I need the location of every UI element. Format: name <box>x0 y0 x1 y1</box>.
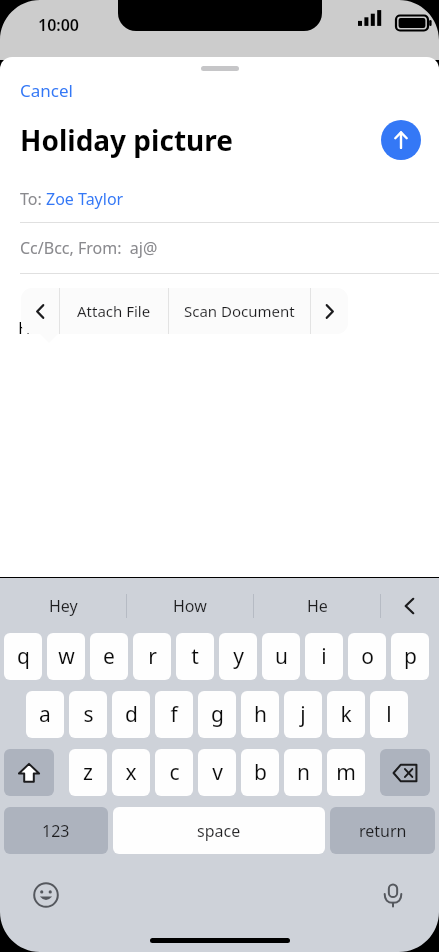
button[interactable]: How <box>127 578 253 633</box>
staticText: q <box>17 642 30 671</box>
button[interactable]: b <box>241 749 279 796</box>
staticText: a <box>39 700 51 729</box>
button[interactable]: k <box>327 691 365 738</box>
button[interactable]: return <box>330 807 435 854</box>
staticText: Hi <box>18 316 35 339</box>
button[interactable]: Emoji <box>26 875 66 915</box>
button[interactable]: a <box>26 691 64 738</box>
button[interactable]: He <box>254 578 380 633</box>
staticText: t <box>191 642 199 671</box>
staticText: n <box>297 758 310 787</box>
button[interactable]: f <box>155 691 193 738</box>
staticText: u <box>275 642 288 671</box>
staticText: x <box>125 758 137 787</box>
staticText: Cc/Bcc, From: aj@ <box>20 237 158 259</box>
staticText: g <box>211 700 224 729</box>
button[interactable]: Attach File <box>60 288 168 334</box>
staticText: k <box>340 700 352 729</box>
staticText: y <box>233 642 244 671</box>
button[interactable]: h <box>241 691 279 738</box>
staticText: return <box>359 820 407 842</box>
button[interactable]: 123 <box>4 807 108 854</box>
button[interactable]: space <box>113 807 325 854</box>
button[interactable]: Next <box>311 288 348 334</box>
button[interactable]: r <box>133 633 171 680</box>
button[interactable]: y <box>219 633 257 680</box>
button[interactable]: Shift <box>4 749 54 796</box>
staticText: l <box>386 700 392 729</box>
staticText: Holiday picture <box>20 121 381 159</box>
staticText: f <box>170 700 178 729</box>
button[interactable]: i <box>305 633 343 680</box>
button[interactable]: e <box>90 633 128 680</box>
button[interactable]: Send <box>381 120 421 160</box>
staticText: space <box>197 820 241 842</box>
staticText: e <box>103 642 115 671</box>
staticText: r <box>148 642 157 671</box>
staticText: h <box>254 700 267 729</box>
staticText: 10:00 <box>38 14 80 36</box>
button[interactable]: Dictation <box>373 875 413 915</box>
staticText: w <box>58 642 75 671</box>
button[interactable]: t <box>176 633 214 680</box>
button[interactable]: q <box>4 633 42 680</box>
button[interactable]: v <box>198 749 236 796</box>
staticText: b <box>254 758 267 787</box>
staticText: He <box>307 595 328 617</box>
button[interactable]: Backspace <box>380 749 430 796</box>
staticText: Cancel <box>20 79 73 102</box>
button[interactable]: g <box>198 691 236 738</box>
staticText: Attach File <box>77 301 151 321</box>
staticText: p <box>404 642 417 671</box>
button[interactable]: Cancel <box>0 73 93 108</box>
staticText: j <box>300 700 306 729</box>
staticText: i <box>321 642 327 671</box>
button[interactable]: d <box>112 691 150 738</box>
button[interactable]: u <box>262 633 300 680</box>
button[interactable]: To: <box>0 186 439 222</box>
staticText: To: <box>20 188 46 210</box>
button[interactable]: z <box>69 749 107 796</box>
button[interactable]: m <box>327 749 365 796</box>
button[interactable]: Scan Document <box>169 288 310 334</box>
button[interactable]: j <box>284 691 322 738</box>
staticText: Scan Document <box>184 301 295 321</box>
button[interactable]: Cc/Bcc, From: aj@ <box>0 223 439 273</box>
button[interactable]: l <box>370 691 408 738</box>
button[interactable]: s <box>69 691 107 738</box>
staticText: z <box>83 758 93 787</box>
staticText: o <box>361 642 374 671</box>
button[interactable]: w <box>47 633 85 680</box>
button[interactable]: o <box>348 633 386 680</box>
button[interactable]: n <box>284 749 322 796</box>
button[interactable]: c <box>155 749 193 796</box>
button[interactable]: x <box>112 749 150 796</box>
staticText: c <box>169 758 180 787</box>
staticText: Zoe Taylor <box>46 188 124 210</box>
staticText: v <box>212 758 223 787</box>
staticText: m <box>336 758 356 787</box>
button[interactable]: Previous <box>21 288 59 334</box>
staticText: How <box>173 595 207 617</box>
staticText: s <box>83 700 94 729</box>
staticText: Hey <box>49 595 78 617</box>
button[interactable]: Collapse suggestions <box>381 578 439 633</box>
staticText: 123 <box>42 820 70 842</box>
staticText: d <box>125 700 138 729</box>
button[interactable]: p <box>391 633 429 680</box>
button[interactable]: Hey <box>0 578 126 633</box>
